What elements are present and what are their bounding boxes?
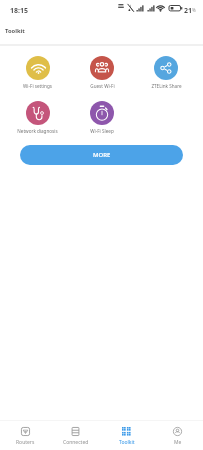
- staticText: Wi-Fi settings: [23, 83, 52, 89]
- staticText: Wi-Fi Sleep: [90, 128, 114, 134]
- staticText: Toolkit: [119, 439, 135, 446]
- staticText: MORE: [93, 151, 111, 159]
- button[interactable]: Me: [152, 421, 203, 450]
- button[interactable]: MORE: [20, 145, 183, 165]
- staticText: Routers: [16, 439, 35, 446]
- staticText: ZTELink Share: [151, 83, 182, 89]
- button[interactable]: Wi-Fi Sleep: [70, 101, 134, 134]
- staticText: Me: [174, 439, 182, 446]
- staticText: 21: [184, 6, 193, 16]
- button[interactable]: Network diagnosis: [5, 101, 70, 134]
- button[interactable]: ZTELink Share: [134, 56, 198, 89]
- button[interactable]: Guest Wi-Fi: [70, 56, 134, 89]
- button[interactable]: Toolkit: [101, 421, 152, 450]
- button[interactable]: Connected: [50, 421, 101, 450]
- staticText: %: [192, 7, 196, 13]
- staticText: Network diagnosis: [17, 128, 58, 134]
- staticText: 18:15: [10, 6, 28, 16]
- button[interactable]: Wi-Fi settings: [5, 56, 70, 89]
- staticText: Toolkit: [5, 27, 25, 35]
- button[interactable]: Routers: [0, 421, 50, 450]
- staticText: Guest Wi-Fi: [90, 83, 115, 89]
- staticText: Connected: [63, 439, 89, 446]
